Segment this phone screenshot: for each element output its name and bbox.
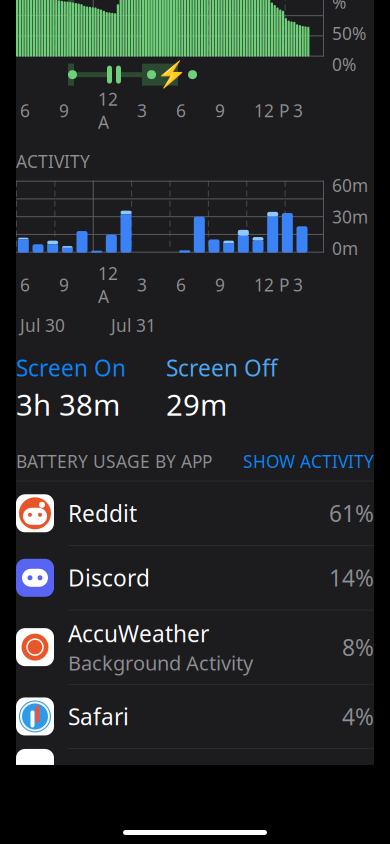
staticText: 6 bbox=[176, 273, 186, 296]
staticText: 60m bbox=[332, 174, 368, 197]
staticText: 12 A bbox=[98, 88, 118, 134]
button[interactable]: AccuWeather bbox=[16, 610, 374, 684]
staticText: SHOW ACTIVITY bbox=[243, 450, 374, 473]
staticText: 30m bbox=[332, 205, 368, 228]
staticText: 3 bbox=[293, 99, 303, 122]
staticText: Jul 31 bbox=[111, 314, 156, 337]
button[interactable]: SHOW ACTIVITY bbox=[243, 450, 374, 473]
staticText: 9 bbox=[59, 99, 69, 122]
staticText: Screen Off bbox=[166, 353, 278, 383]
staticText: Reddit bbox=[68, 498, 137, 528]
staticText: 12 P bbox=[254, 99, 289, 122]
staticText: 61% bbox=[329, 498, 374, 528]
staticText: 12 P bbox=[254, 273, 289, 296]
button[interactable]: Screen Off bbox=[166, 353, 278, 383]
staticText: AccuWeather bbox=[68, 618, 209, 648]
staticText: Screen On bbox=[16, 353, 126, 383]
staticText: 3 bbox=[137, 99, 147, 122]
staticText: BATTERY USAGE BY APP bbox=[16, 450, 212, 473]
staticText: 50% bbox=[332, 22, 366, 45]
staticText: ACTIVITY bbox=[16, 150, 90, 173]
staticText: 4% bbox=[342, 701, 374, 731]
staticText: 9 bbox=[215, 99, 225, 122]
staticText: Background Activity bbox=[68, 649, 253, 676]
staticText: 9 bbox=[215, 273, 225, 296]
button[interactable]: Discord bbox=[16, 546, 374, 610]
staticText: Jul 30 bbox=[20, 314, 65, 337]
staticText: 3 bbox=[137, 273, 147, 296]
staticText: 0m bbox=[332, 237, 358, 260]
staticText: 14% bbox=[329, 563, 374, 593]
staticText: 8% bbox=[342, 632, 374, 662]
staticText: 3 bbox=[293, 273, 303, 296]
staticText: Safari bbox=[68, 701, 129, 731]
staticText: 6 bbox=[20, 273, 30, 296]
button[interactable]: Safari bbox=[16, 684, 374, 749]
staticText: 3h 38m bbox=[16, 385, 120, 424]
staticText: ⚡ bbox=[156, 60, 188, 89]
staticText: 29m bbox=[166, 385, 227, 424]
button[interactable]: Screen On bbox=[16, 353, 126, 383]
staticText: 100% bbox=[332, 0, 362, 14]
button[interactable]: Reddit bbox=[16, 481, 374, 546]
staticText: 6 bbox=[20, 99, 30, 122]
staticText: 6 bbox=[176, 99, 186, 122]
staticText: 12 A bbox=[98, 262, 118, 308]
staticText: 9 bbox=[59, 273, 69, 296]
staticText: 0% bbox=[332, 53, 356, 76]
staticText: Discord bbox=[68, 563, 150, 593]
